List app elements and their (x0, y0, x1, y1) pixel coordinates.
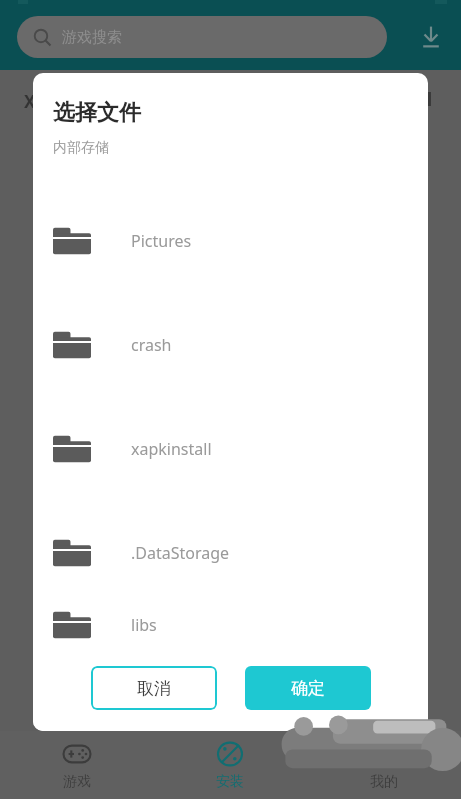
button[interactable]: .DataStorage (33, 501, 428, 605)
button[interactable]: xapkinstall (33, 397, 428, 501)
staticText: .DataStorage (131, 542, 230, 564)
staticText: 内部存储 (53, 139, 109, 157)
button[interactable]: Pictures (33, 189, 428, 293)
button[interactable]: 游戏 (0, 733, 153, 797)
staticText: X (24, 90, 36, 113)
staticText: 确定 (291, 678, 325, 699)
staticText: 取消 (137, 678, 171, 699)
staticText: Pictures (131, 230, 192, 252)
button[interactable]: 安装 (153, 733, 307, 797)
button[interactable]: 取消 (91, 666, 217, 710)
button[interactable]: 确定 (245, 666, 371, 710)
staticText: 游戏搜索 (62, 28, 122, 47)
button[interactable]: 我的 (307, 733, 461, 797)
button[interactable]: crash (33, 293, 428, 397)
staticText: 我的 (370, 773, 398, 791)
staticText: xapkinstall (131, 438, 212, 460)
staticText: crash (131, 334, 172, 356)
button[interactable]: libs (33, 605, 428, 645)
staticText: 游戏 (63, 773, 91, 791)
button[interactable]: Downloads (409, 15, 453, 59)
staticText: 选择文件 (53, 99, 141, 127)
button[interactable]: 游戏搜索 (17, 16, 387, 58)
staticText: 安装 (216, 773, 244, 791)
staticText: libs (131, 614, 157, 636)
